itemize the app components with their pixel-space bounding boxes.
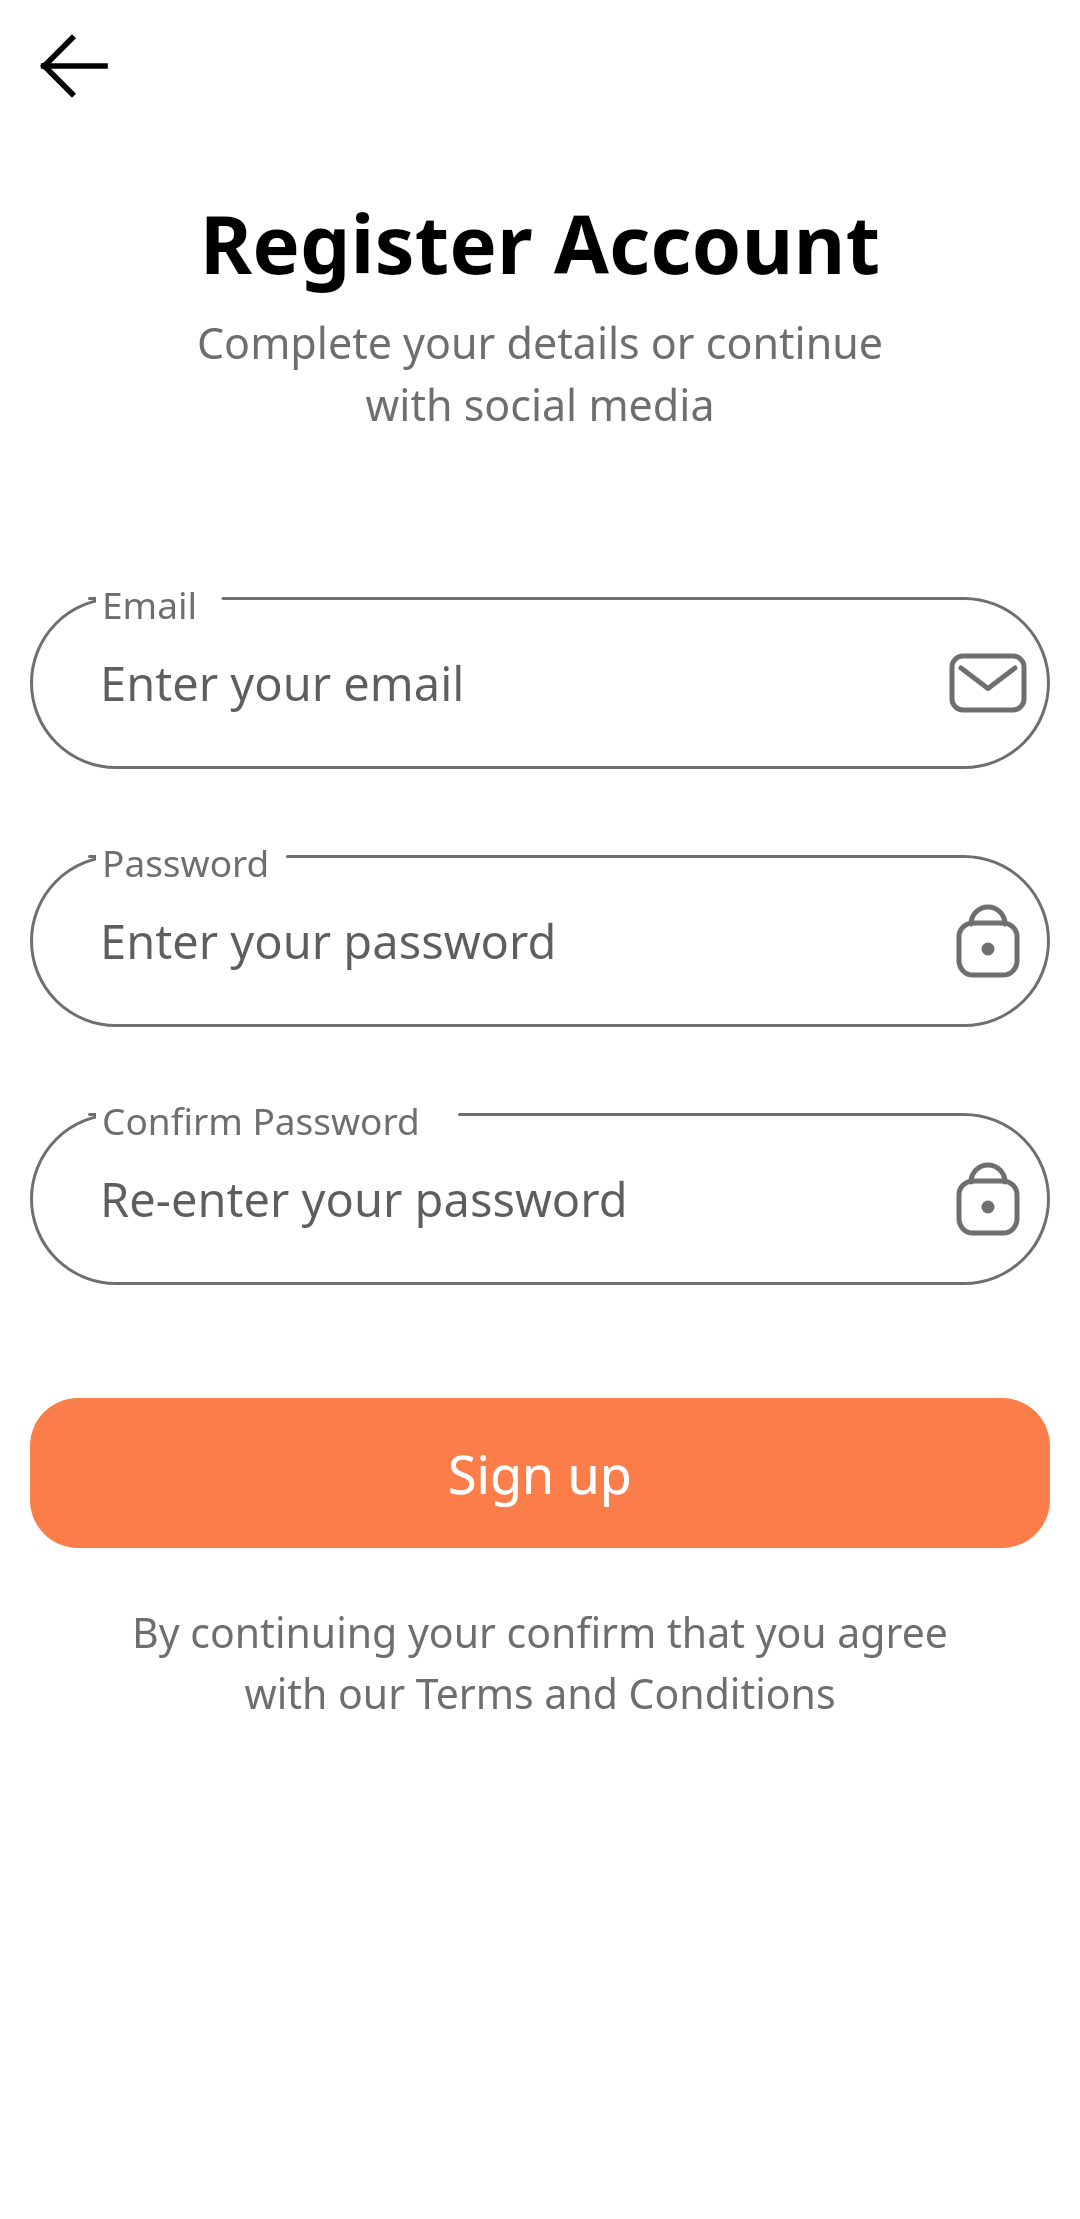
staticText: Sign up [448, 1438, 632, 1509]
staticText: Complete your details or continue with s… [0, 313, 1080, 433]
staticText: Register Account [0, 188, 1080, 297]
button[interactable]: Email [30, 597, 1050, 769]
staticText: Email [102, 579, 198, 629]
button[interactable]: Password [30, 855, 1050, 1027]
button[interactable]: Sign up [30, 1398, 1050, 1548]
staticText: Enter your email [100, 651, 465, 715]
staticText: Confirm Password [102, 1095, 420, 1145]
staticText: Re-enter your password [100, 1167, 628, 1231]
button[interactable]: Confirm Password [30, 1113, 1050, 1285]
button[interactable]: By continuing your confirm that you agre… [0, 1604, 1080, 1721]
staticText: Password [102, 837, 270, 887]
staticText: Enter your password [100, 909, 557, 973]
button[interactable]: Back [26, 18, 122, 114]
